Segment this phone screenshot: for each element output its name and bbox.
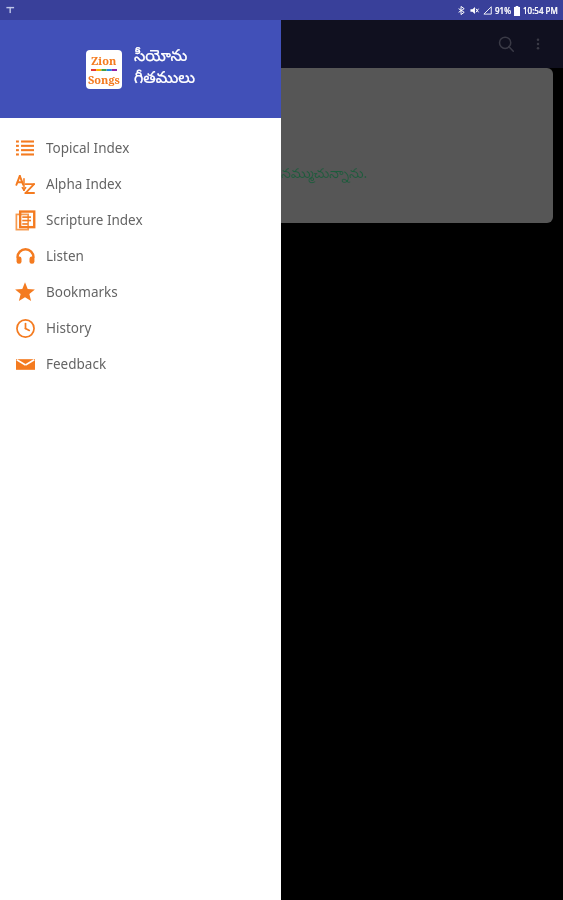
button[interactable]: History xyxy=(0,310,281,346)
staticText: Bookmarks xyxy=(46,283,118,301)
button[interactable]: More options xyxy=(523,29,553,59)
staticText: Topical Index xyxy=(46,139,130,157)
button[interactable]: Alpha Index xyxy=(0,166,281,202)
button[interactable]: Search xyxy=(491,29,521,59)
button[interactable]: Bookmarks xyxy=(0,274,281,310)
button[interactable]: Feedback xyxy=(0,346,281,382)
staticText: Welcome xyxy=(24,82,98,105)
staticText: 10:54 PM CDT xyxy=(24,130,115,149)
staticText: Scripture Index xyxy=(46,211,143,229)
staticText: Songs xyxy=(88,72,120,87)
staticText: August 23, 2017 xyxy=(24,109,130,128)
button[interactable]: Welcome xyxy=(10,68,553,223)
staticText: గీతములు xyxy=(134,69,196,91)
staticText: Feedback xyxy=(46,355,107,373)
button[interactable]: Topical Index xyxy=(0,130,281,166)
button[interactable]: Listen xyxy=(0,238,281,274)
staticText: 91% xyxy=(495,5,511,16)
button[interactable]: Scripture Index xyxy=(0,202,281,238)
staticText: సీయోను xyxy=(134,47,188,69)
staticText: Listen xyxy=(46,247,84,265)
staticText: నేను క్రీస్తు దినము వరకు దానిని కొనసాగిం… xyxy=(24,163,368,185)
staticText: 10:54 PM xyxy=(523,5,558,16)
staticText: History xyxy=(46,319,92,337)
staticText: Alpha Index xyxy=(46,175,122,193)
staticText: Zion xyxy=(91,53,117,68)
